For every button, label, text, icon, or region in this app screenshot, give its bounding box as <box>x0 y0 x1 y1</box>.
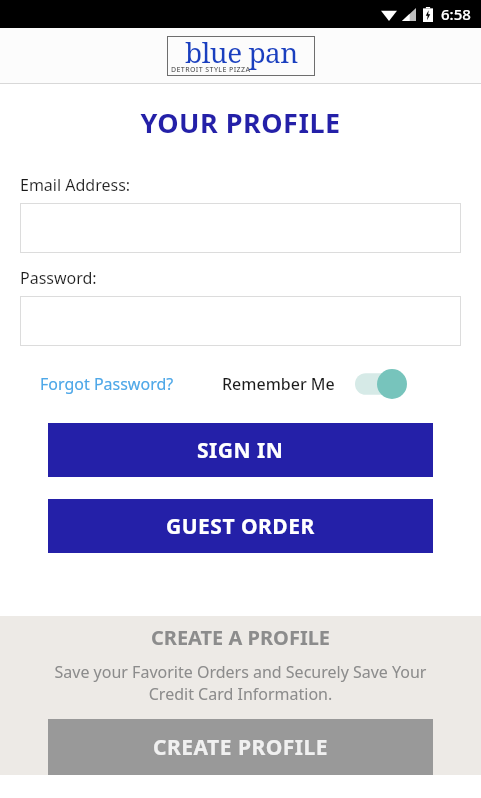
staticText: YOUR PROFILE <box>0 104 481 141</box>
button[interactable]: CREATE PROFILE <box>48 719 433 775</box>
button[interactable]: Blue Pan Detroit Style Pizza home <box>167 36 315 76</box>
staticText: Email Address: <box>20 174 131 196</box>
staticText: CREATE A PROFILE <box>0 624 481 651</box>
staticText: 6:58 <box>441 4 471 24</box>
staticText: Remember Me <box>222 373 335 395</box>
staticText: blue pan <box>185 33 298 71</box>
staticText: CREATE PROFILE <box>153 733 329 762</box>
staticText: SIGN IN <box>197 436 284 465</box>
button[interactable]: Forgot Password? <box>40 369 174 399</box>
staticText: Forgot Password? <box>40 373 174 395</box>
button[interactable]: GUEST ORDER <box>48 499 433 553</box>
staticText: Save your Favorite Orders and Securely S… <box>34 661 447 705</box>
button[interactable]: SIGN IN <box>48 423 433 477</box>
staticText: Password: <box>20 267 97 289</box>
staticText: GUEST ORDER <box>166 512 315 541</box>
button[interactable] <box>20 203 461 253</box>
staticText: DETROIT STYLE PIZZA <box>171 65 251 75</box>
button[interactable] <box>20 296 461 346</box>
button[interactable]: Remember Me toggle, on <box>355 369 407 399</box>
